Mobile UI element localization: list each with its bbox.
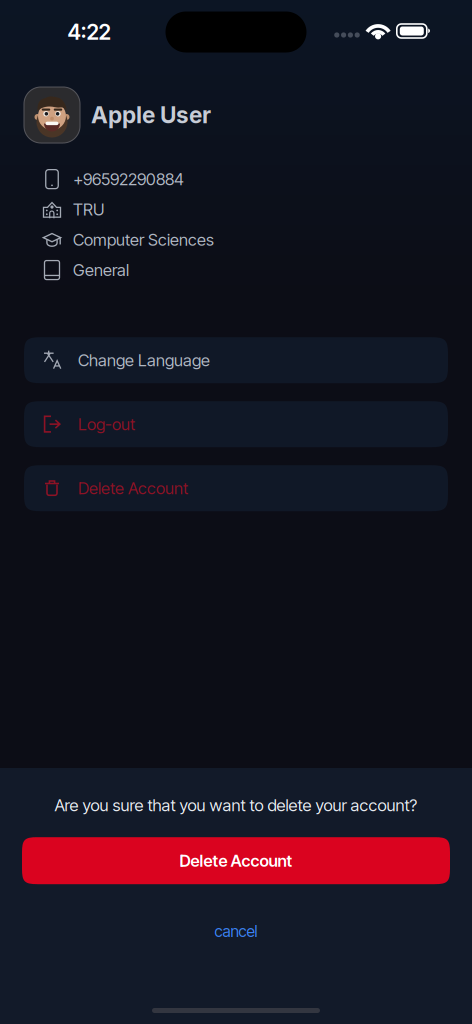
button[interactable]: Delete Account <box>22 837 450 884</box>
staticText: 4:22 <box>67 19 110 45</box>
staticText: Computer Sciences <box>73 230 214 250</box>
staticText: Delete Account <box>179 851 292 870</box>
button[interactable]: Delete Account <box>24 465 448 511</box>
staticText: Delete Account <box>78 478 188 498</box>
staticText: Change Language <box>78 350 210 370</box>
staticText: Apple User <box>91 101 211 129</box>
button[interactable]: Log-out <box>24 401 448 447</box>
button[interactable]: cancel <box>188 916 283 946</box>
staticText: General <box>73 260 129 280</box>
button[interactable]: Change Language <box>24 337 448 383</box>
staticText: cancel <box>214 922 257 941</box>
staticText: Log-out <box>78 414 135 434</box>
staticText: Are you sure that you want to delete you… <box>54 795 417 815</box>
staticText: TRU <box>73 199 104 219</box>
staticText: +96592290884 <box>73 169 184 189</box>
